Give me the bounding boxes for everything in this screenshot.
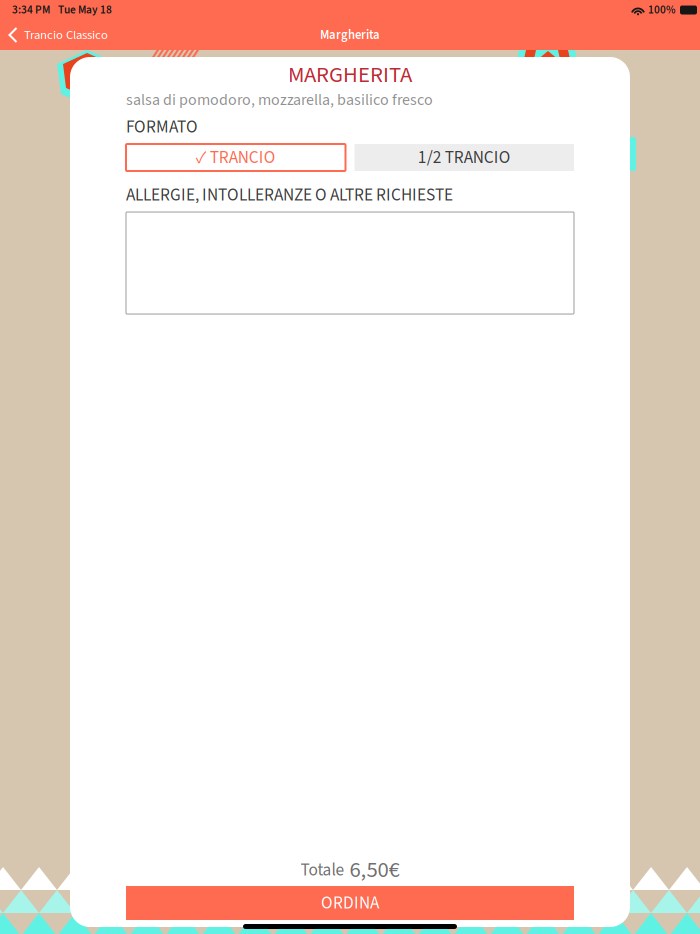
staticText: ALLERGIE, INTOLLERANZE O ALTRE RICHIESTE (126, 183, 453, 207)
staticText: ✓ TRANCIO (196, 145, 276, 170)
staticText: 1/2 TRANCIO (418, 145, 511, 170)
staticText: Tue May 18 (58, 2, 112, 18)
staticText: Margherita (320, 26, 380, 44)
button[interactable]: ✓ TRANCIO (126, 144, 345, 171)
staticText: Totale (300, 858, 344, 882)
staticText: salsa di pomodoro, mozzarella, basilico … (126, 89, 433, 111)
staticText: ORDINA (321, 891, 379, 915)
staticText: FORMATO (126, 115, 198, 139)
staticText: 6,50€ (349, 854, 399, 886)
staticText: MARGHERITA (288, 59, 412, 91)
button[interactable]: ORDINA (126, 886, 574, 920)
staticText: 3:34 PM (12, 2, 50, 18)
button[interactable]: 1/2 TRANCIO (354, 144, 574, 171)
staticText: 100% (648, 2, 676, 18)
button[interactable]: Trancio Classico (8, 22, 108, 48)
staticText: Trancio Classico (24, 26, 108, 44)
